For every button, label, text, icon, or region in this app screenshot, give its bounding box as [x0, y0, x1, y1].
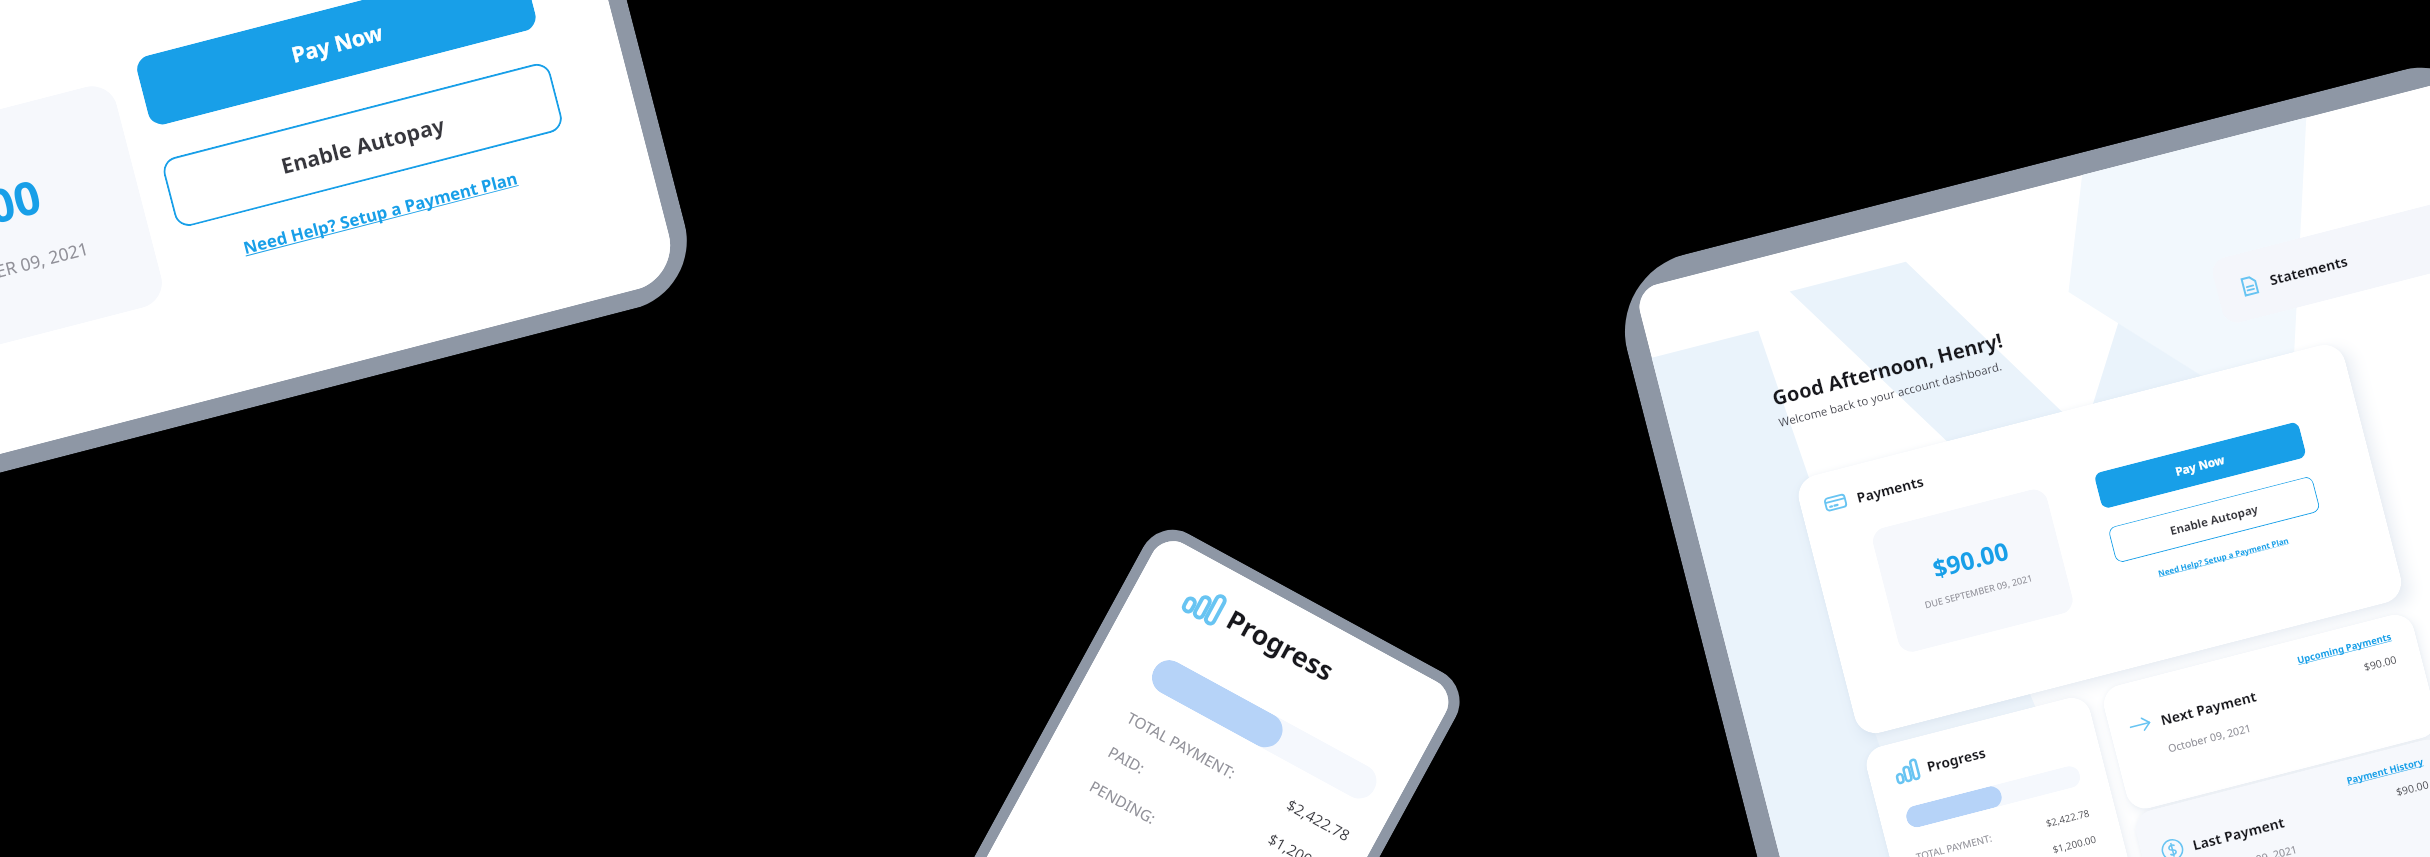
button[interactable]: Need Help? Setup a Payment Plan: [184, 151, 577, 274]
staticText: $90.00: [2394, 777, 2430, 799]
staticText: Pay Now: [2174, 452, 2227, 480]
staticText: TOTAL PAYMENT:: [1123, 707, 1239, 784]
staticText: DUE SEPTEMBER 09, 2021: [0, 236, 91, 312]
staticText: September 09, 2021: [2198, 842, 2299, 857]
button[interactable]: Upcoming Payments: [2296, 630, 2393, 667]
staticText: TOTAL PAYMENT:: [1915, 831, 1993, 857]
staticText: PAID:: [1104, 742, 1149, 779]
button[interactable]: Payment History: [2345, 755, 2425, 787]
button[interactable]: Enable Autopay: [160, 60, 565, 229]
button[interactable]: Pay Now: [2093, 421, 2307, 509]
staticText: $90.00: [0, 164, 48, 261]
staticText: Pay Now: [288, 17, 385, 69]
staticText: $1,200.00: [1264, 829, 1335, 857]
staticText: DUE SEPTEMBER 09, 2021: [1923, 571, 2034, 611]
staticText: Need Help? Setup a Payment Plan: [241, 166, 520, 259]
staticText: Enable Autopay: [278, 110, 448, 180]
staticText: $90.00: [1929, 534, 2012, 585]
staticText: Payments: [1855, 471, 1926, 507]
staticText: $2,422.78: [1283, 795, 1353, 846]
staticText: Next Payment: [2158, 686, 2259, 729]
button[interactable]: Statements: [2209, 188, 2430, 326]
staticText: Need Help? Setup a Payment Plan: [2157, 534, 2290, 578]
staticText: Welcome back to your account dashboard.: [1777, 358, 2004, 431]
button[interactable]: Need Help? Setup a Payment Plan: [2120, 525, 2327, 588]
staticText: Progress: [1220, 601, 1341, 689]
staticText: $2,422.78: [2044, 806, 2091, 830]
staticText: Statements: [2267, 251, 2350, 289]
staticText: PENDING:: [1086, 776, 1160, 829]
button[interactable]: Pay Now: [134, 0, 539, 128]
staticText: Enable Autopay: [2168, 501, 2260, 539]
staticText: $1,200.00: [2051, 833, 2098, 856]
staticText: October 09, 2021: [2166, 720, 2253, 755]
staticText: Last Payment: [2191, 812, 2286, 854]
staticText: $90.00: [2362, 652, 2399, 674]
staticText: Good Afternoon, Henry!: [1769, 326, 2006, 412]
staticText: Progress: [1925, 743, 1987, 776]
button[interactable]: Enable Autopay: [2107, 475, 2321, 564]
